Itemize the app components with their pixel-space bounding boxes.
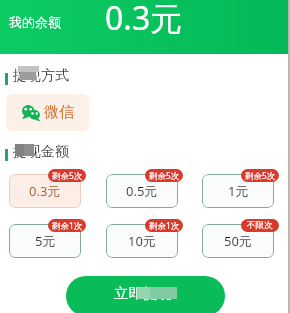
staticText: 微信 [44, 103, 74, 122]
button[interactable]: 5元 [9, 224, 81, 258]
staticText: 0.5元 [126, 182, 158, 200]
staticText: 剩余5次 [245, 170, 276, 182]
button[interactable]: 0.5元 [106, 174, 178, 208]
button[interactable] [66, 276, 225, 313]
button[interactable]: 0.3元 [9, 174, 81, 208]
staticText: 5元 [35, 232, 56, 250]
staticText: 我的余额 [9, 14, 61, 30]
staticText: 剩余1次 [52, 220, 83, 232]
staticText: 提现金额 [13, 143, 69, 161]
staticText: 1元 [228, 182, 249, 200]
staticText: 0.3元 [29, 182, 61, 200]
staticText: 10元 [128, 232, 156, 250]
staticText: 0.3元 [105, 0, 183, 40]
staticText: 剩余5次 [149, 170, 180, 182]
staticText: 不限次 [247, 220, 273, 231]
button[interactable]: 10元 [106, 224, 178, 258]
button[interactable]: 1元 [202, 174, 274, 208]
staticText: 立即提现 [114, 284, 172, 302]
button[interactable]: 50元 [202, 224, 274, 258]
other: WeChat [22, 105, 40, 120]
staticText: 50元 [224, 232, 252, 250]
staticText: 剩余5次 [52, 170, 83, 182]
staticText: 剩余1次 [149, 220, 180, 232]
staticText: 提现方式 [13, 67, 69, 85]
button[interactable]: WeChat [6, 94, 89, 131]
